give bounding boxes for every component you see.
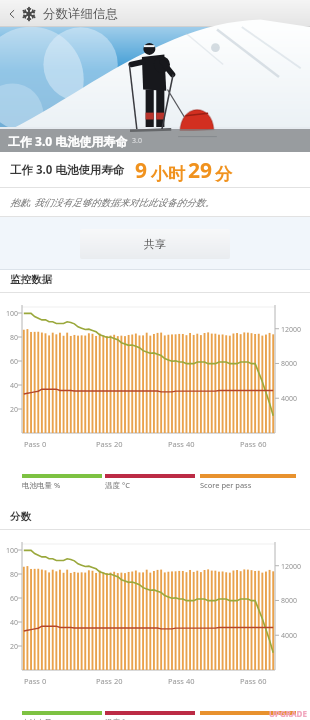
- staticText: 分数详细信息: [43, 6, 118, 22]
- staticText: 监控数据: [10, 273, 52, 286]
- staticText: 温度 °C: [105, 717, 130, 720]
- staticText: 电池电量 %: [22, 717, 61, 720]
- staticText: 温度 °C: [105, 480, 130, 490]
- staticText: Pass 60: [240, 439, 267, 449]
- staticText: 80: [10, 570, 19, 580]
- staticText: Pass 40: [168, 676, 195, 686]
- staticText: 60: [10, 357, 19, 367]
- staticText: 3.0: [132, 136, 142, 146]
- staticText: 12000: [281, 325, 302, 335]
- staticText: 8000: [281, 596, 298, 606]
- staticText: Score per pass: [200, 480, 252, 490]
- staticText: 共享: [144, 237, 166, 251]
- staticText: 40: [10, 618, 19, 628]
- staticText: Pass 20: [96, 676, 123, 686]
- staticText: 工作 3.0 电池使用寿命: [10, 162, 125, 178]
- staticText: 分数: [10, 510, 31, 523]
- staticText: 8000: [281, 359, 298, 369]
- staticText: 12000: [281, 562, 302, 572]
- staticText: 20: [10, 642, 19, 652]
- button[interactable]: Back: [4, 2, 20, 26]
- staticText: 20: [10, 405, 19, 415]
- staticText: Pass 0: [24, 439, 47, 449]
- staticText: Pass 40: [168, 439, 195, 449]
- staticText: Pass 20: [96, 439, 123, 449]
- staticText: 分: [215, 164, 232, 185]
- staticText: 抱歉, 我们没有足够的数据来对比此设备的分数。: [10, 196, 215, 209]
- staticText: 100: [6, 546, 19, 556]
- staticText: 100: [6, 309, 19, 319]
- staticText: 4000: [281, 631, 298, 641]
- staticText: 40: [10, 381, 19, 391]
- staticText: 29: [188, 156, 213, 185]
- staticText: 工作 3.0 电池使用寿命: [8, 133, 128, 149]
- staticText: 9: [135, 156, 148, 185]
- staticText: 小时: [151, 164, 185, 185]
- staticText: 4000: [281, 394, 298, 404]
- staticText: UPGRADE: [269, 708, 307, 719]
- staticText: 60: [10, 594, 19, 604]
- button[interactable]: 共享: [80, 229, 230, 259]
- staticText: 80: [10, 333, 19, 343]
- staticText: Pass 0: [24, 676, 47, 686]
- staticText: Pass 60: [240, 676, 267, 686]
- staticText: 电池电量 %: [22, 480, 61, 490]
